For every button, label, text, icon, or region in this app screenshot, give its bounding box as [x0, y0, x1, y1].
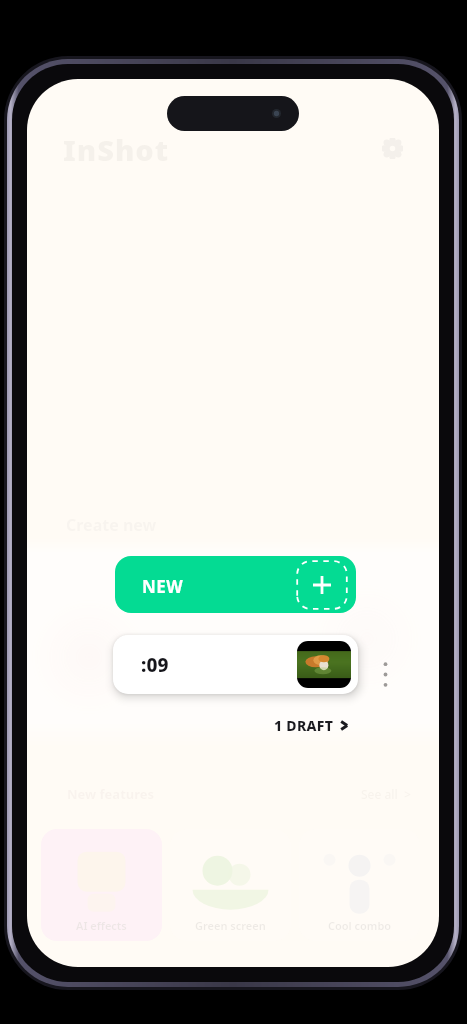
staticText: NEW: [142, 575, 183, 598]
button[interactable]: AI effects: [41, 829, 162, 941]
staticText: Cool combo: [328, 918, 392, 933]
button[interactable]: 1 DRAFT: [274, 716, 349, 735]
button[interactable]: Add new project: [296, 560, 348, 610]
staticText: 1 DRAFT: [274, 716, 334, 735]
button[interactable]: More options: [369, 635, 401, 694]
staticText: :09: [141, 652, 169, 678]
button[interactable]: Green screen: [170, 829, 291, 941]
staticText: InShot: [63, 130, 170, 166]
staticText: AI effects: [76, 918, 127, 933]
button[interactable]: Settings: [382, 138, 403, 159]
button[interactable]: NEW: [115, 556, 356, 613]
staticText: Green screen: [195, 918, 266, 933]
button[interactable]: :09: [113, 635, 358, 694]
